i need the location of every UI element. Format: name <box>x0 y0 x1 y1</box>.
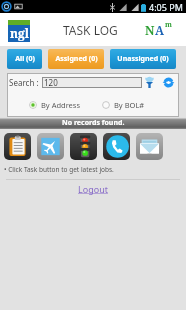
button[interactable]: Filter <box>144 77 155 88</box>
staticText: ngl <box>10 25 29 41</box>
staticText: By BOL# <box>114 100 145 110</box>
button[interactable]: Status <box>70 133 97 160</box>
staticText: All (0) <box>15 54 35 64</box>
button[interactable]: Call <box>103 133 130 160</box>
button[interactable]: Flight <box>37 133 64 160</box>
staticText: By Address <box>41 100 81 110</box>
staticText: Unassigned (0) <box>117 54 169 64</box>
button[interactable]: Mail <box>136 133 163 160</box>
staticText: Search : <box>9 77 39 88</box>
staticText: A <box>155 22 165 38</box>
staticText: 4:05 PM <box>149 1 183 13</box>
button[interactable]: By Address <box>29 100 81 110</box>
staticText: 120 <box>44 77 58 88</box>
button[interactable]: Logout <box>78 183 108 195</box>
button[interactable]: Unassigned (0) <box>110 49 176 69</box>
button[interactable]: Tasks <box>4 133 31 160</box>
staticText: • Click Task button to get latest jobs. <box>4 165 114 174</box>
button[interactable]: Assigned (0) <box>48 49 104 69</box>
button[interactable]: By BOL# <box>102 100 145 110</box>
staticText: m <box>165 20 172 30</box>
staticText: TASK LOG <box>63 22 118 38</box>
button[interactable]: All (0) <box>7 49 42 69</box>
staticText: No records found. <box>62 118 125 128</box>
button[interactable]: Refresh <box>162 77 175 88</box>
staticText: Assigned (0) <box>55 54 98 64</box>
staticText: N <box>145 22 155 38</box>
